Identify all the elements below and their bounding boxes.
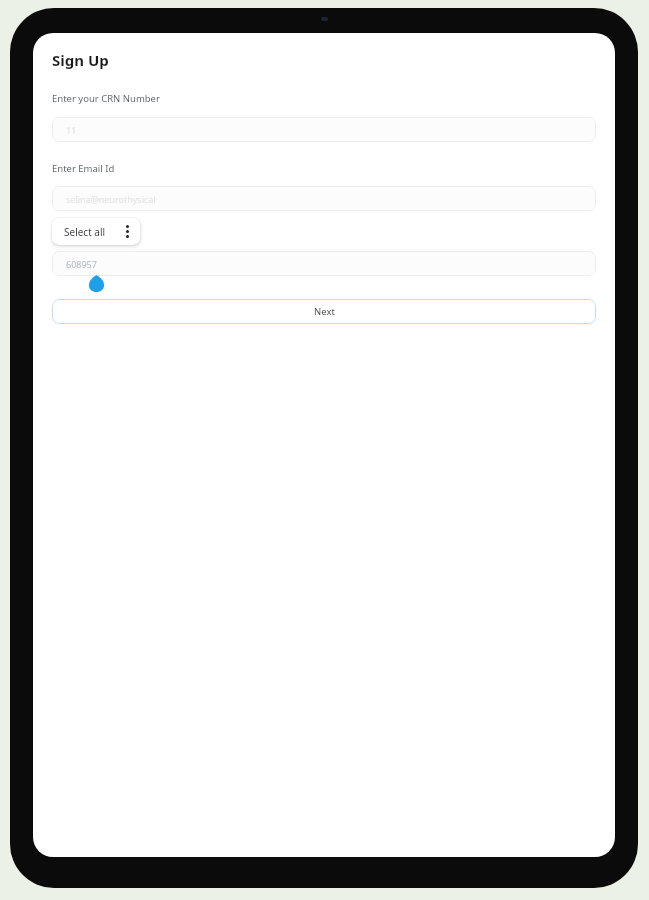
button[interactable]: 608957	[52, 251, 596, 276]
staticText: Enter Email Id	[52, 162, 115, 175]
staticText: Select all	[64, 225, 106, 239]
button[interactable]: Next	[52, 299, 596, 324]
button[interactable]: selina@neurothysical	[52, 186, 596, 211]
staticText: 608957	[66, 258, 97, 270]
staticText: 11	[66, 124, 77, 136]
staticText: Sign Up	[52, 50, 109, 70]
staticText: selina@neurothysical	[66, 193, 156, 205]
button[interactable]: Select all	[52, 218, 116, 245]
staticText: Next	[314, 305, 335, 318]
staticText: Enter your CRN Number	[52, 92, 160, 105]
button[interactable]: 11	[52, 117, 596, 142]
button[interactable]: More options	[116, 218, 138, 245]
